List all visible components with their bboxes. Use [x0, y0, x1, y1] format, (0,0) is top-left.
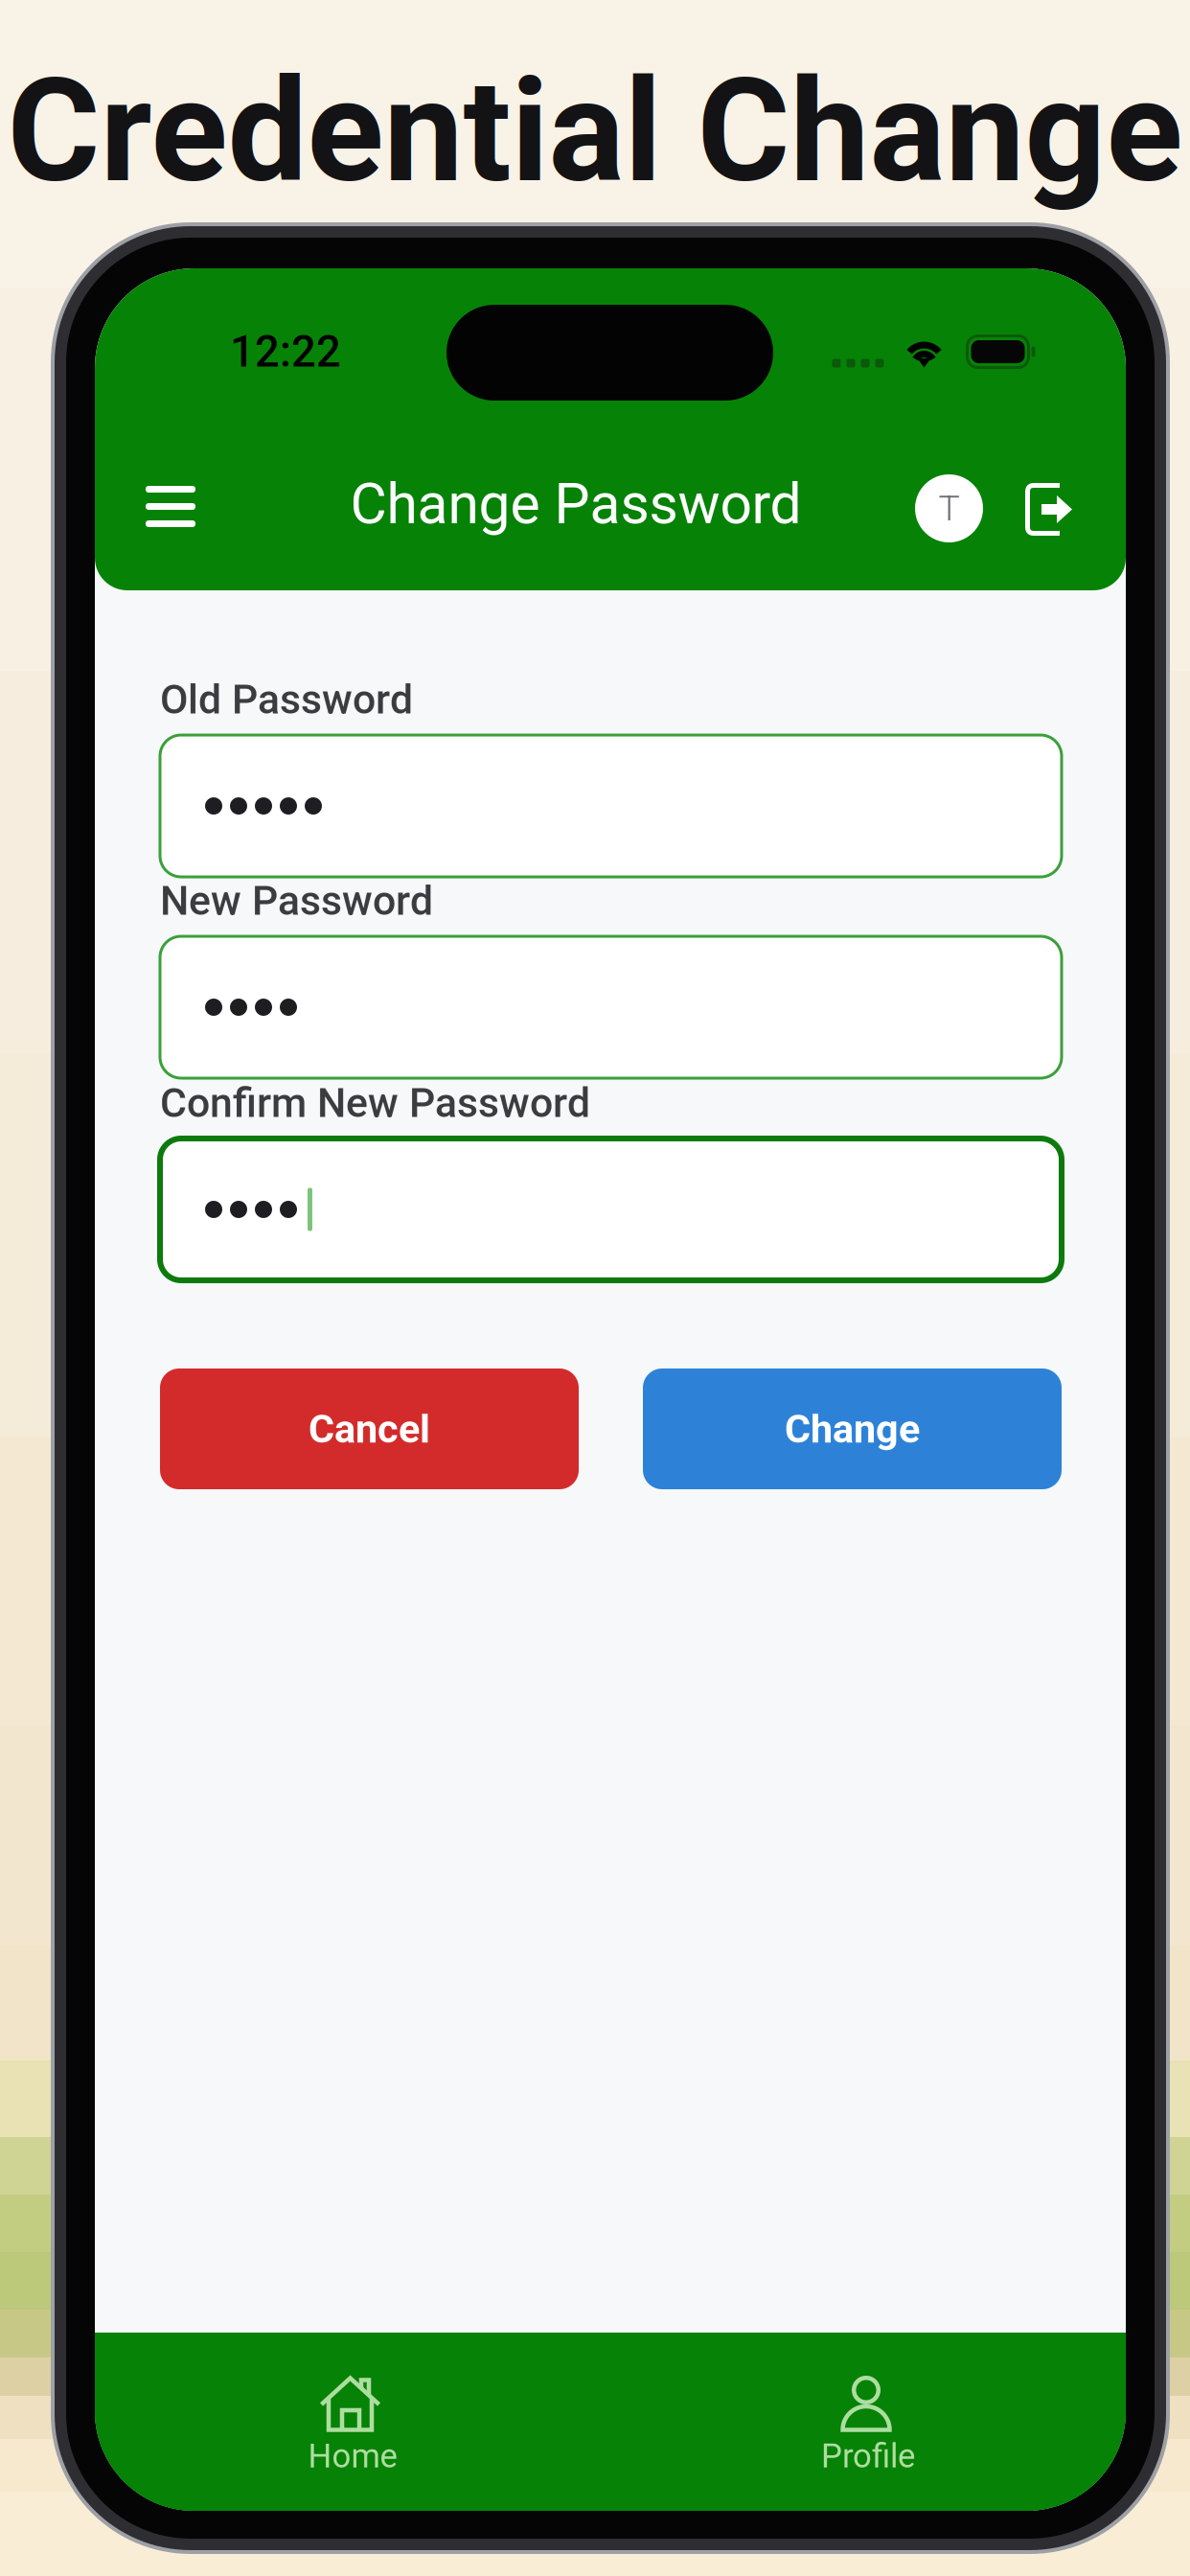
staticText: Home — [308, 2437, 397, 2476]
staticText: Profile — [821, 2437, 915, 2476]
staticText: Change Password — [350, 471, 801, 537]
staticText: Credential Change — [7, 49, 1183, 215]
button[interactable]: Profile — [610, 2333, 1126, 2511]
staticText: Confirm New Password — [160, 1079, 590, 1127]
staticText: Old Password — [160, 676, 413, 724]
staticText: 12:22 — [230, 326, 341, 377]
staticText: T — [938, 487, 960, 529]
button[interactable]: Change — [643, 1368, 1062, 1489]
button[interactable]: Old Password — [160, 735, 1062, 877]
button[interactable]: Log out — [1025, 483, 1073, 536]
button[interactable]: Home — [95, 2333, 610, 2511]
staticText: Change — [785, 1406, 920, 1452]
button[interactable]: Account — [915, 474, 983, 542]
staticText: New Password — [160, 877, 433, 925]
button[interactable]: Cancel — [160, 1368, 579, 1489]
button[interactable]: New Password — [160, 936, 1062, 1078]
button[interactable]: Menu — [146, 486, 195, 527]
staticText: Cancel — [309, 1406, 430, 1452]
button[interactable]: Confirm New Password — [160, 1138, 1062, 1280]
